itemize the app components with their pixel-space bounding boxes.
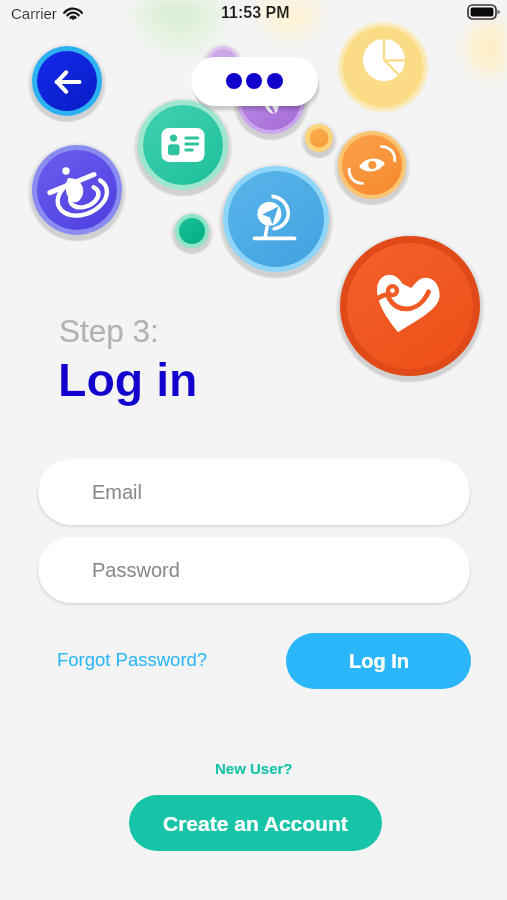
staticText: New User? — [215, 760, 293, 777]
button[interactable]: Create an Account — [129, 795, 382, 851]
button[interactable]: Email — [38, 459, 470, 525]
staticText: Forgot Password? — [57, 649, 208, 670]
staticText: 11:53 PM — [221, 4, 290, 22]
staticText: Step 3: — [59, 313, 159, 348]
button[interactable]: Log In — [286, 633, 471, 689]
staticText: Email — [92, 481, 143, 503]
staticText: Log In — [349, 650, 409, 672]
staticText: Log in — [58, 354, 198, 406]
button[interactable]: Back — [32, 46, 102, 116]
staticText: Carrier — [11, 5, 57, 22]
staticText: Create an Account — [163, 812, 348, 835]
button[interactable]: Forgot Password? — [51, 643, 214, 676]
button[interactable]: New User? — [207, 756, 301, 781]
button[interactable]: Password — [38, 537, 470, 603]
staticText: Password — [92, 559, 180, 581]
